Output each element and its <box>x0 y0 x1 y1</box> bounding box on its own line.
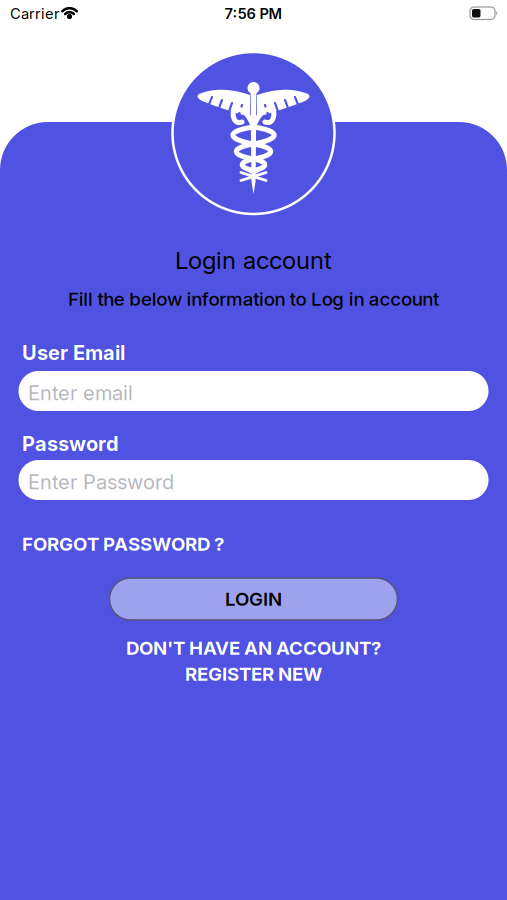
staticText: DON'T HAVE AN ACCOUNT? <box>126 637 381 659</box>
staticText: LOGIN <box>225 588 282 610</box>
staticText: Enter Password <box>28 470 174 494</box>
button[interactable]: Enter email <box>18 371 488 411</box>
staticText: REGISTER NEW <box>185 663 322 685</box>
staticText: 7:56 PM <box>224 5 282 22</box>
staticText: Login account <box>175 246 332 274</box>
staticText: Password <box>22 432 119 456</box>
button[interactable]: LOGIN <box>109 578 397 620</box>
staticText: User Email <box>22 341 125 365</box>
button[interactable]: Enter Password <box>18 460 488 500</box>
staticText: FORGOT PASSWORD ? <box>22 533 224 555</box>
button[interactable]: DON'T HAVE AN ACCOUNT? <box>0 637 507 685</box>
button[interactable]: FORGOT PASSWORD ? <box>0 533 224 555</box>
staticText: Carrier <box>10 5 60 22</box>
staticText: Enter email <box>28 381 133 405</box>
staticText: Fill the below information to Log in acc… <box>68 288 439 310</box>
